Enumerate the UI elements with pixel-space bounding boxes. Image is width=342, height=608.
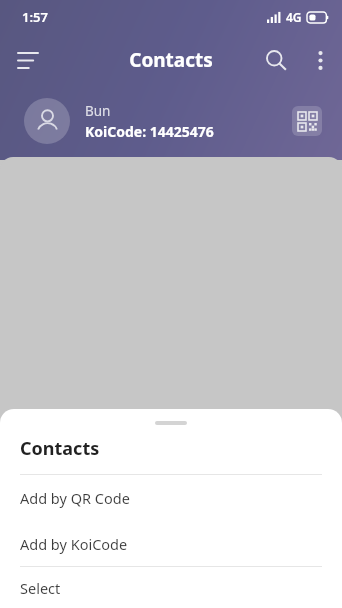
staticText: Add by QR Code [20,488,130,508]
button[interactable]: Show QR code [292,106,322,136]
staticText: Bun [85,102,111,120]
staticText: 4G [286,9,302,25]
staticText: KoiCode: 14425476 [85,122,214,141]
button[interactable]: Search [254,38,298,82]
button[interactable]: Menu [6,38,50,82]
button[interactable]: Bun [0,90,342,152]
staticText: Select [20,578,61,598]
staticText: Add by KoiCode [20,534,128,554]
staticText: Contacts [129,47,213,73]
button[interactable]: Add by QR Code [0,475,342,521]
button[interactable]: Select [0,567,342,608]
staticText: 1:57 [22,8,48,26]
staticText: Contacts [20,436,100,461]
button[interactable]: Add by KoiCode [0,521,342,566]
button[interactable]: More options [298,38,342,82]
